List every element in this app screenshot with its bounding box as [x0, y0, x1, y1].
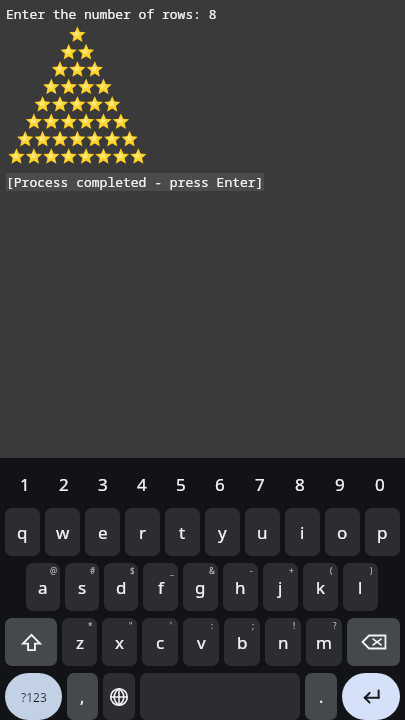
staticText: 9: [335, 473, 345, 496]
staticText: .: [319, 686, 324, 708]
button[interactable]: Symbols: [5, 673, 62, 720]
button[interactable]: 7: [240, 469, 280, 500]
staticText: d: [116, 576, 127, 599]
staticText: ?123: [21, 689, 47, 705]
staticText: n: [278, 631, 289, 654]
button[interactable]: c: [142, 618, 178, 666]
staticText: x: [115, 631, 124, 654]
button[interactable]: i: [285, 508, 320, 556]
staticText: ?: [333, 620, 337, 631]
button[interactable]: 5: [161, 469, 200, 500]
button[interactable]: 3: [83, 469, 122, 500]
staticText: [Process completed - press Enter]: [6, 173, 264, 191]
staticText: &: [209, 565, 215, 576]
button[interactable]: u: [245, 508, 280, 556]
button[interactable]: 9: [320, 469, 360, 500]
button[interactable]: 6: [200, 469, 240, 500]
button[interactable]: a: [26, 563, 60, 611]
staticText: *: [88, 620, 93, 631]
button[interactable]: q: [5, 508, 40, 556]
staticText: f: [158, 576, 164, 599]
button[interactable]: v: [183, 618, 219, 666]
staticText: ): [370, 565, 373, 576]
staticText: !: [293, 620, 296, 631]
button[interactable]: l: [343, 563, 378, 611]
staticText: ": [129, 620, 133, 631]
button[interactable]: 4: [122, 469, 161, 500]
button[interactable]: Period: [305, 673, 337, 720]
button[interactable]: k: [303, 563, 338, 611]
staticText: @: [50, 565, 58, 576]
button[interactable]: w: [45, 508, 80, 556]
button[interactable]: g: [183, 563, 218, 611]
button[interactable]: Change language: [103, 673, 135, 720]
staticText: Enter the number of rows: 8: [6, 5, 217, 23]
button[interactable]: e: [85, 508, 120, 556]
staticText: e: [98, 521, 108, 544]
staticText: z: [76, 631, 84, 654]
staticText: #: [90, 565, 96, 576]
staticText: w: [56, 521, 70, 544]
button[interactable]: Enter: [342, 673, 400, 720]
button[interactable]: x: [102, 618, 137, 666]
staticText: y: [218, 521, 227, 544]
button[interactable]: y: [205, 508, 240, 556]
staticText: h: [235, 576, 246, 599]
staticText: s: [78, 576, 87, 599]
button[interactable]: b: [224, 618, 260, 666]
button[interactable]: h: [223, 563, 258, 611]
button[interactable]: m: [306, 618, 342, 666]
staticText: 1: [20, 473, 30, 496]
button[interactable]: r: [125, 508, 160, 556]
staticText: a: [38, 576, 48, 599]
button[interactable]: o: [325, 508, 360, 556]
button[interactable]: s: [65, 563, 99, 611]
button[interactable]: f: [143, 563, 178, 611]
staticText: g: [195, 576, 206, 599]
button[interactable]: n: [265, 618, 301, 666]
staticText: 4: [137, 473, 147, 496]
button[interactable]: Shift: [5, 618, 57, 666]
button[interactable]: d: [104, 563, 138, 611]
staticText: p: [377, 521, 388, 544]
staticText: $: [130, 565, 135, 576]
staticText: 6: [215, 473, 225, 496]
button[interactable]: t: [165, 508, 200, 556]
button[interactable]: Comma: [67, 673, 98, 720]
staticText: +: [289, 565, 294, 576]
staticText: -: [250, 565, 253, 576]
staticText: (: [330, 565, 333, 576]
staticText: b: [237, 631, 248, 654]
staticText: m: [316, 631, 332, 654]
staticText: ': [170, 620, 172, 631]
staticText: q: [17, 521, 28, 544]
button[interactable]: z: [62, 618, 97, 666]
staticText: ,: [80, 686, 85, 708]
button[interactable]: 1: [5, 469, 44, 500]
button[interactable]: Backspace: [347, 618, 400, 666]
staticText: l: [358, 576, 363, 599]
staticText: :: [211, 620, 214, 631]
button[interactable]: 0: [360, 469, 400, 500]
button[interactable]: 8: [280, 469, 320, 500]
staticText: 0: [375, 473, 385, 496]
staticText: 8: [295, 473, 305, 496]
staticText: o: [337, 521, 348, 544]
staticText: c: [156, 631, 165, 654]
button[interactable]: 2: [44, 469, 83, 500]
staticText: t: [179, 521, 186, 544]
staticText: v: [197, 631, 206, 654]
staticText: i: [300, 521, 305, 544]
button[interactable]: j: [263, 563, 298, 611]
staticText: 2: [59, 473, 69, 496]
staticText: k: [316, 576, 326, 599]
staticText: r: [139, 521, 147, 544]
button[interactable]: p: [365, 508, 400, 556]
staticText: 7: [255, 473, 265, 496]
staticText: 5: [176, 473, 186, 496]
staticText: u: [257, 521, 268, 544]
staticText: _: [170, 565, 174, 576]
staticText: ;: [252, 620, 255, 631]
staticText: 3: [98, 473, 108, 496]
